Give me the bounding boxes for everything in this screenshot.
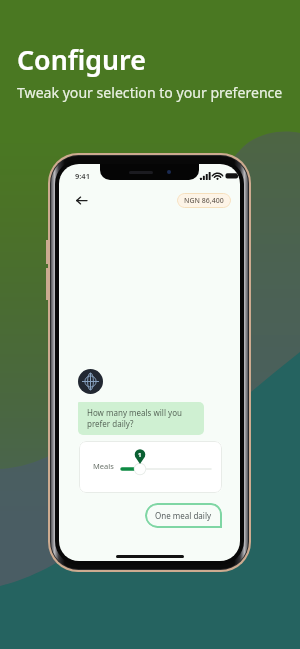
staticText: How many meals will you prefer daily? [87,407,182,430]
staticText: One meal daily [155,510,212,521]
staticText: Tweak your selection to your preference [17,83,283,102]
staticText: 9:41 [75,171,90,181]
button[interactable]: One meal daily [145,503,222,528]
staticText: 1 [138,451,142,457]
button[interactable]: NGN 86,400 [177,193,231,208]
staticText: Meals [93,461,114,471]
staticText: Configure [17,41,146,78]
button[interactable]: Back [71,190,91,210]
staticText: NGN 86,400 [184,196,224,206]
